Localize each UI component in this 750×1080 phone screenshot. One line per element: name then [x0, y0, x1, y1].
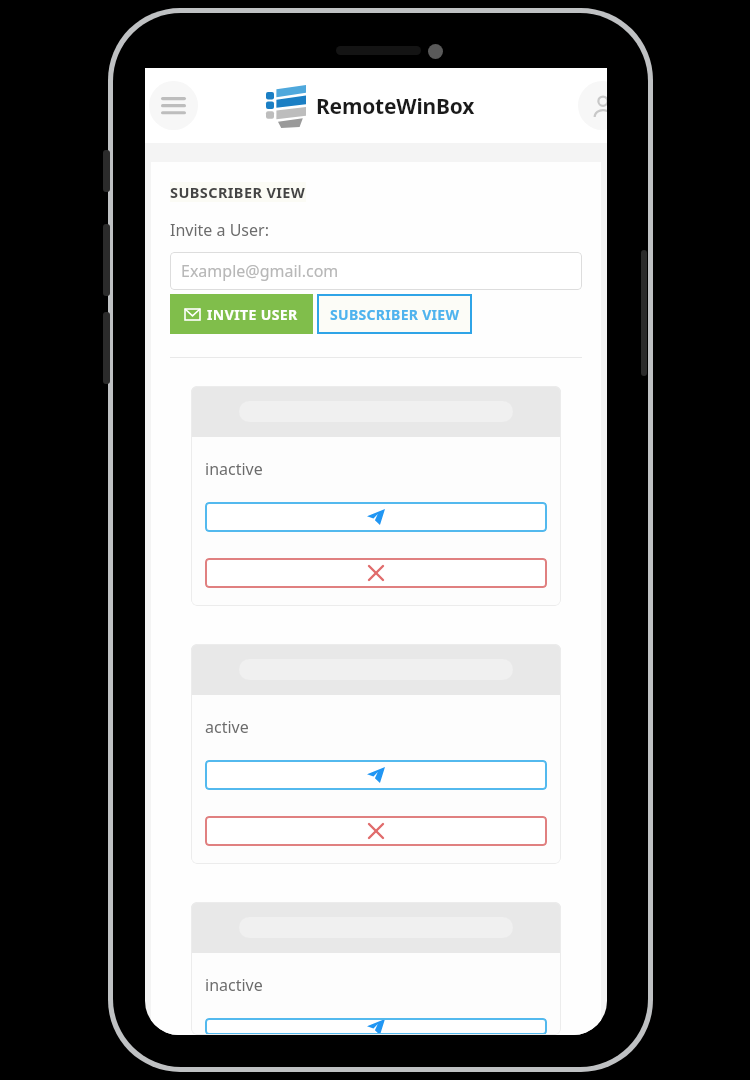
button[interactable]: inactive	[191, 386, 561, 606]
staticText: inactive	[205, 974, 263, 996]
button[interactable]: inactive	[191, 902, 561, 1035]
staticText: RemoteWinBox	[316, 92, 475, 121]
button[interactable]: Menu	[149, 81, 198, 130]
button[interactable]: Remove	[205, 816, 547, 846]
staticText: Example@gmail.com	[181, 260, 339, 282]
button[interactable]: Send invite	[205, 502, 547, 532]
button[interactable]: active	[191, 644, 561, 864]
staticText: SUBSCRIBER VIEW	[170, 182, 306, 202]
staticText: SUBSCRIBER VIEW	[330, 305, 460, 324]
staticText: Invite a User:	[170, 219, 269, 241]
staticText: INVITE USER	[207, 305, 298, 324]
button[interactable]: Example@gmail.com	[170, 252, 582, 290]
button[interactable]: Profile	[578, 81, 607, 130]
button[interactable]: INVITE USER	[170, 294, 313, 334]
button[interactable]: Remove	[205, 558, 547, 588]
button[interactable]: SUBSCRIBER VIEW	[317, 294, 472, 334]
staticText: inactive	[205, 458, 263, 480]
button[interactable]: Send invite	[205, 760, 547, 790]
button[interactable]: Send invite	[205, 1018, 547, 1035]
staticText: active	[205, 716, 249, 738]
